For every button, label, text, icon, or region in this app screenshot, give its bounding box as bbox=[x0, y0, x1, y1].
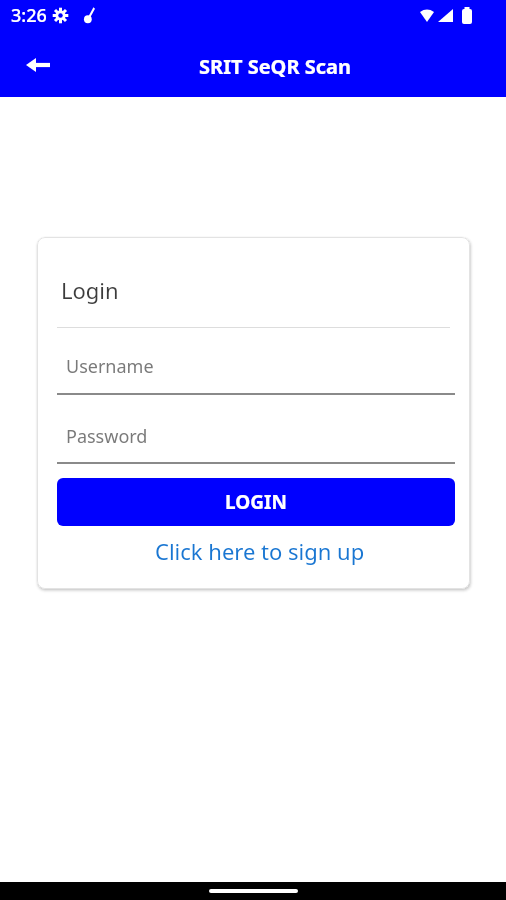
staticText: Click here to sign up bbox=[155, 536, 365, 566]
button[interactable]: LOGIN bbox=[57, 478, 455, 526]
button[interactable]: Password bbox=[57, 418, 455, 464]
button[interactable] bbox=[18, 45, 58, 85]
staticText: 3:26 bbox=[11, 3, 47, 28]
staticText: SRIT SeQR Scan bbox=[199, 53, 352, 80]
button[interactable]: Click here to sign up bbox=[155, 536, 365, 566]
staticText: LOGIN bbox=[225, 489, 287, 515]
staticText: Username bbox=[66, 354, 154, 379]
button[interactable]: Username bbox=[57, 349, 455, 395]
staticText: Password bbox=[66, 424, 148, 449]
staticText: Login bbox=[61, 275, 119, 305]
